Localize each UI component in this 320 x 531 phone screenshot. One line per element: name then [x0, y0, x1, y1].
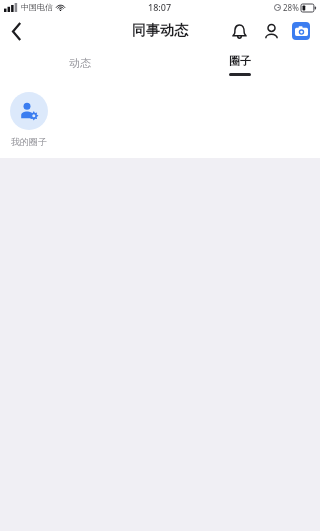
staticText: 同事动态 [132, 22, 188, 40]
button[interactable]: Notifications [226, 18, 252, 44]
staticText: 动态 [69, 56, 91, 70]
button[interactable]: Back [0, 14, 34, 48]
staticText: 18:07 [148, 1, 172, 13]
button[interactable]: Profile [258, 18, 284, 44]
button[interactable]: 我的圈子 [10, 92, 48, 147]
button[interactable]: 动态 [0, 48, 160, 81]
staticText: 圈子 [229, 54, 251, 68]
button[interactable]: Camera [288, 18, 314, 44]
staticText: 我的圈子 [11, 136, 47, 147]
staticText: 28% [283, 2, 299, 13]
button[interactable]: 圈子 [160, 48, 320, 81]
staticText: 中国电信 [21, 2, 53, 12]
